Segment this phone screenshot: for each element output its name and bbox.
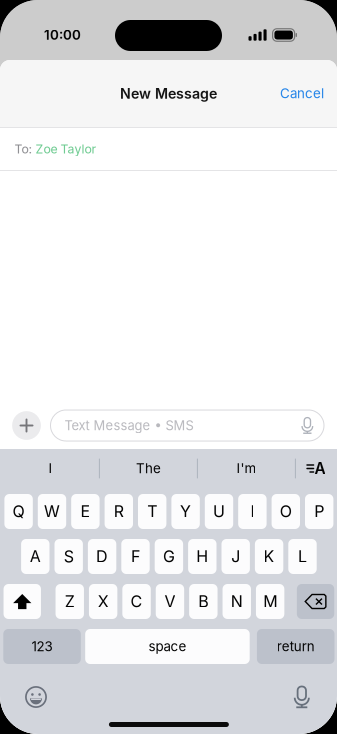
button[interactable]: H — [188, 539, 216, 574]
staticText: Q — [13, 502, 25, 521]
staticText: C — [130, 592, 142, 611]
staticText: K — [264, 547, 275, 566]
staticText: M — [263, 592, 277, 611]
staticText: 10:00 — [44, 27, 81, 43]
button[interactable]: A — [21, 539, 49, 574]
button[interactable]: C — [122, 584, 151, 619]
button[interactable]: V — [156, 584, 184, 619]
button[interactable]: space — [85, 629, 250, 664]
button[interactable]: R — [105, 494, 133, 529]
button[interactable]: The — [100, 449, 197, 488]
button[interactable]: E — [71, 494, 100, 529]
staticText: H — [196, 547, 208, 566]
staticText: To: — [14, 142, 35, 156]
staticText: 123 — [32, 638, 53, 654]
button[interactable]: Dictation — [280, 680, 324, 714]
staticText: J — [231, 547, 240, 566]
button[interactable]: Text formatting — [296, 449, 336, 488]
staticText: D — [96, 547, 108, 566]
staticText: Zoe Taylor — [35, 142, 96, 156]
button[interactable]: Q — [4, 494, 33, 529]
staticText: Text Message • SMS — [64, 418, 193, 433]
button[interactable]: J — [221, 539, 250, 574]
button[interactable]: 123 — [3, 629, 81, 664]
staticText: X — [98, 592, 109, 611]
button[interactable]: Add attachment — [12, 411, 41, 440]
staticText: F — [131, 547, 140, 566]
staticText: I — [250, 502, 254, 521]
button[interactable]: W — [38, 494, 66, 529]
staticText: B — [198, 592, 208, 611]
button[interactable]: B — [189, 584, 217, 619]
button[interactable]: O — [272, 494, 300, 529]
button[interactable]: P — [305, 494, 333, 529]
staticText: The — [136, 460, 161, 476]
button[interactable]: M — [256, 584, 284, 619]
button[interactable]: S — [54, 539, 83, 574]
button[interactable]: I — [2, 449, 99, 488]
staticText: P — [314, 502, 324, 521]
staticText: O — [280, 502, 292, 521]
staticText: G — [163, 547, 175, 566]
staticText: T — [147, 502, 157, 521]
button[interactable]: Emoji keyboard — [14, 680, 58, 714]
button[interactable]: Cancel — [267, 71, 337, 115]
button[interactable]: Z — [55, 584, 84, 619]
staticText: Cancel — [280, 85, 324, 101]
button[interactable]: I'm — [198, 449, 295, 488]
button[interactable]: X — [89, 584, 117, 619]
staticText: W — [44, 502, 60, 521]
staticText: I'm — [236, 460, 256, 476]
staticText: return — [277, 638, 315, 654]
staticText: N — [231, 592, 243, 611]
button[interactable]: G — [155, 539, 183, 574]
staticText: L — [298, 547, 307, 566]
staticText: A — [314, 459, 325, 478]
staticText: R — [114, 502, 124, 521]
staticText: A — [30, 547, 41, 566]
staticText: New Message — [120, 85, 217, 102]
button[interactable]: K — [255, 539, 283, 574]
button[interactable]: return — [257, 629, 334, 664]
button[interactable]: F — [121, 539, 150, 574]
button[interactable]: To: — [0, 128, 337, 170]
staticText: Y — [180, 502, 191, 521]
staticText: V — [164, 592, 175, 611]
button[interactable]: U — [205, 494, 233, 529]
button[interactable]: D — [88, 539, 116, 574]
button[interactable]: Y — [171, 494, 200, 529]
staticText: S — [64, 547, 74, 566]
staticText: U — [213, 502, 225, 521]
button[interactable]: I — [238, 494, 267, 529]
staticText: space — [148, 638, 186, 654]
button[interactable] — [3, 584, 41, 619]
staticText: E — [80, 502, 90, 521]
button[interactable]: N — [223, 584, 251, 619]
button[interactable]: T — [138, 494, 166, 529]
staticText: Z — [65, 592, 75, 611]
staticText: I — [48, 460, 52, 476]
button[interactable]: L — [288, 539, 317, 574]
button[interactable] — [297, 584, 334, 619]
